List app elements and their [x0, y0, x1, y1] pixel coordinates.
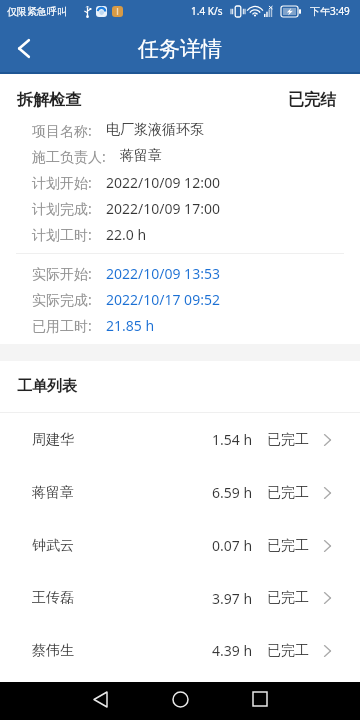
staticText: 计划开始:	[32, 173, 92, 192]
staticText: 任务详情	[138, 36, 222, 62]
staticText: 已用工时:	[32, 316, 92, 335]
staticText: 实际完成:	[32, 290, 92, 309]
staticText: 计划工时:	[32, 225, 92, 244]
button[interactable]: 蒋留章	[0, 466, 360, 519]
staticText: 0.07 h	[212, 536, 253, 555]
button[interactable]: 蔡伟生	[0, 624, 360, 677]
staticText: 施工负责人:	[32, 147, 106, 166]
staticText: 2022/10/17 09:52	[106, 290, 220, 309]
staticText: 已完工	[267, 484, 309, 502]
staticText: 1.54 h	[212, 430, 253, 449]
staticText: 蔡伟生	[32, 642, 74, 660]
staticText: 工单列表	[17, 377, 77, 396]
staticText: 已完工	[267, 589, 309, 607]
button[interactable]: 王传磊	[0, 572, 360, 624]
staticText: 蒋留章	[120, 147, 162, 165]
staticText: 2022/10/09 17:00	[106, 199, 220, 218]
button[interactable]: Back	[0, 24, 48, 72]
staticText: 1.4 K/s	[191, 4, 223, 18]
staticText: 2022/10/09 12:00	[106, 173, 220, 192]
button[interactable]: 钟武云	[0, 519, 360, 572]
staticText: 钟武云	[32, 537, 74, 555]
staticText: 计划完成:	[32, 199, 92, 218]
staticText: 拆解检查	[17, 90, 81, 110]
staticText: 3.97 h	[212, 589, 253, 608]
staticText: 下午3:49	[310, 4, 350, 18]
staticText: 周建华	[32, 431, 74, 449]
staticText: 仅限紧急呼叫	[7, 5, 67, 18]
staticText: 2022/10/09 13:53	[106, 264, 220, 283]
staticText: 蒋留章	[32, 484, 74, 502]
button[interactable]: Back	[76, 680, 124, 718]
staticText: 已完工	[267, 431, 309, 449]
staticText: 项目名称:	[32, 121, 92, 140]
staticText: 21.85 h	[106, 316, 155, 335]
staticText: 已完工	[267, 642, 309, 660]
button[interactable]: Recent apps	[236, 680, 284, 718]
button[interactable]: 周建华	[0, 413, 360, 466]
staticText: 4.39 h	[212, 641, 253, 660]
staticText: 实际开始:	[32, 264, 92, 283]
staticText: 王传磊	[32, 589, 74, 607]
button[interactable]: Home	[156, 680, 204, 718]
staticText: 已完结	[288, 90, 336, 110]
staticText: 22.0 h	[106, 225, 147, 244]
staticText: 电厂浆液循环泵	[106, 121, 204, 139]
staticText: 6.59 h	[212, 483, 253, 502]
staticText: 已完工	[267, 537, 309, 555]
